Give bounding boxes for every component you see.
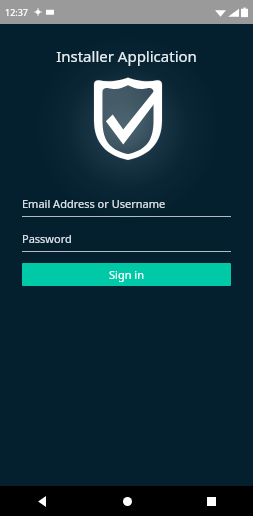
button[interactable]: Password [22,231,231,252]
staticText: Installer Application [0,46,253,66]
button[interactable]: Recent apps [169,486,253,516]
button[interactable]: Sign in [22,263,231,286]
button[interactable]: Back [0,486,85,516]
staticText: 12:37 [5,6,29,18]
staticText: Email Address or Username [22,196,166,211]
button[interactable]: Home [85,486,169,516]
staticText: Sign in [109,267,144,282]
button[interactable]: Email Address or Username [22,196,231,217]
staticText: Password [22,231,72,246]
